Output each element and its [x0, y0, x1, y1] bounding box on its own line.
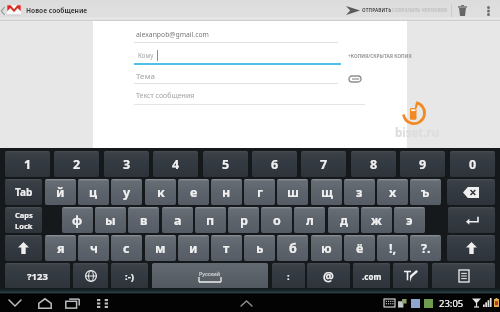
- staticText: :-): [125, 270, 134, 283]
- button[interactable]: @: [307, 263, 350, 289]
- button[interactable]: :-): [111, 263, 148, 289]
- button[interactable]: Tab: [5, 179, 42, 205]
- staticText: ю: [321, 240, 332, 257]
- staticText: Текст сообщения: [136, 91, 195, 101]
- button[interactable]: с: [111, 235, 142, 261]
- button[interactable]: Shift: [447, 235, 495, 261]
- staticText: Caps: [15, 210, 33, 220]
- button[interactable]: Обзор: [60, 294, 84, 312]
- button[interactable]: ОТПРАВИТЬ: [343, 0, 391, 21]
- button[interactable]: 9: [400, 151, 445, 177]
- button[interactable]: м: [145, 235, 176, 261]
- button[interactable]: щ: [311, 179, 342, 205]
- staticText: и: [189, 240, 198, 257]
- button[interactable]: ь: [244, 235, 275, 261]
- staticText: б: [289, 240, 297, 257]
- staticText: 0: [469, 156, 477, 173]
- button[interactable]: ?123: [5, 263, 70, 289]
- button[interactable]: :: [272, 263, 305, 289]
- button[interactable]: а: [162, 207, 193, 233]
- button[interactable]: Состояние системы: [380, 294, 500, 312]
- button[interactable]: е: [178, 179, 209, 205]
- button[interactable]: ю: [311, 235, 342, 261]
- staticText: а: [174, 212, 182, 229]
- button[interactable]: !,: [377, 235, 408, 261]
- button[interactable]: г: [244, 179, 275, 205]
- staticText: 1: [24, 156, 32, 173]
- staticText: ш: [287, 184, 299, 201]
- button[interactable]: р: [228, 207, 259, 233]
- button[interactable]: к: [145, 179, 176, 205]
- staticText: biset.ru: [395, 125, 440, 141]
- button[interactable]: и: [178, 235, 209, 261]
- button[interactable]: Backspace: [447, 179, 495, 205]
- button[interactable]: 7: [301, 151, 346, 177]
- button[interactable]: Заметки: [432, 263, 495, 289]
- button[interactable]: ш: [277, 179, 308, 205]
- button[interactable]: 1: [5, 151, 50, 177]
- button[interactable]: Удалить: [452, 0, 473, 21]
- button[interactable]: у: [111, 179, 142, 205]
- button[interactable]: Shift: [5, 235, 42, 261]
- button[interactable]: ы: [95, 207, 126, 233]
- button[interactable]: т: [211, 235, 242, 261]
- button[interactable]: п: [195, 207, 226, 233]
- button[interactable]: э: [394, 207, 425, 233]
- staticText: ф: [72, 212, 83, 229]
- button[interactable]: о: [261, 207, 292, 233]
- button[interactable]: Новое сообщение: [0, 0, 88, 21]
- button[interactable]: Главный экран: [33, 294, 57, 312]
- button[interactable]: Назад: [3, 294, 27, 312]
- button[interactable]: .com: [353, 263, 390, 289]
- button[interactable]: ф: [62, 207, 93, 233]
- button[interactable]: Пробел: [152, 263, 268, 289]
- button[interactable]: й: [45, 179, 76, 205]
- staticText: л: [306, 212, 314, 229]
- button[interactable]: Клавиатура: [90, 294, 114, 312]
- staticText: alexanpob@gmail.com: [136, 30, 209, 39]
- button[interactable]: ч: [78, 235, 109, 261]
- button[interactable]: н: [211, 179, 242, 205]
- staticText: х: [389, 184, 397, 201]
- button[interactable]: Показать панель: [236, 294, 256, 312]
- button[interactable]: з: [344, 179, 375, 205]
- button[interactable]: 4: [153, 151, 198, 177]
- staticText: ы: [105, 212, 116, 229]
- button[interactable]: ?.: [410, 235, 441, 261]
- staticText: ?123: [27, 270, 48, 283]
- button[interactable]: Enter: [448, 207, 495, 233]
- button[interactable]: я: [45, 235, 76, 261]
- button[interactable]: Ещё: [478, 0, 499, 21]
- button[interactable]: 5: [203, 151, 248, 177]
- button[interactable]: Язык: [73, 263, 108, 289]
- staticText: СОХРАНИТЬ ЧЕРНОВИК: [392, 7, 450, 13]
- button[interactable]: Прикрепить: [345, 73, 364, 85]
- staticText: +КОПИЯ/СКРЫТАЯ КОПИЯ: [348, 53, 412, 59]
- button[interactable]: б: [277, 235, 308, 261]
- button[interactable]: 2: [54, 151, 99, 177]
- button[interactable]: 0: [450, 151, 495, 177]
- staticText: 5: [222, 156, 230, 173]
- button[interactable]: л: [294, 207, 325, 233]
- staticText: ?.: [421, 240, 431, 257]
- button[interactable]: х: [377, 179, 408, 205]
- staticText: с: [123, 240, 130, 257]
- button[interactable]: ц: [78, 179, 109, 205]
- button[interactable]: д: [328, 207, 359, 233]
- staticText: ь: [256, 240, 264, 257]
- button[interactable]: 8: [351, 151, 396, 177]
- button[interactable]: Рукописный ввод: [393, 263, 428, 289]
- staticText: я: [57, 240, 65, 257]
- staticText: м: [155, 240, 166, 257]
- button[interactable]: СОХРАНИТЬ ЧЕРНОВИК: [391, 0, 451, 21]
- button[interactable]: Caps: [5, 207, 42, 233]
- button[interactable]: ё: [344, 235, 375, 261]
- button[interactable]: ъ: [410, 179, 441, 205]
- button[interactable]: +КОПИЯ/СКРЫТАЯ КОПИЯ: [348, 53, 412, 59]
- staticText: 4: [172, 156, 180, 173]
- button[interactable]: 6: [252, 151, 297, 177]
- button[interactable]: в: [128, 207, 159, 233]
- staticText: ж: [371, 212, 382, 229]
- button[interactable]: 3: [104, 151, 149, 177]
- button[interactable]: ж: [361, 207, 392, 233]
